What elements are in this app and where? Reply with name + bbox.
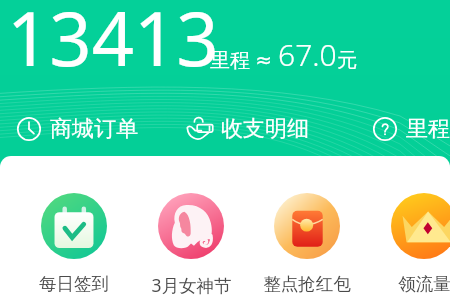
staticText: 商城订单 [50, 115, 138, 143]
button[interactable]: 商城订单 [15, 115, 138, 143]
staticText: 13413 [7, 0, 219, 88]
staticText: 收支明细 [221, 115, 309, 143]
button[interactable]: 每日签到 [16, 193, 132, 295]
staticText: 每日签到 [39, 273, 109, 295]
button[interactable]: 3月女神节 [133, 193, 249, 297]
other: 收支明细 [186, 115, 214, 143]
button[interactable]: 里程规则 [371, 115, 450, 143]
staticText: 元 [337, 48, 357, 73]
other: 商城订单 [15, 115, 43, 143]
staticText: 整点抢红包 [263, 273, 351, 295]
button[interactable]: 领流量 [366, 193, 450, 295]
button[interactable]: 收支明细 [186, 115, 309, 143]
staticText: 3月女神节 [151, 273, 232, 297]
staticText: 67.0 [278, 34, 337, 75]
staticText: 里程 ≈ [210, 46, 278, 73]
other: 里程规则 [371, 115, 399, 143]
staticText: 领流量 [398, 273, 450, 295]
staticText: 里程规则 [406, 115, 450, 143]
button[interactable]: 整点抢红包 [249, 193, 365, 295]
